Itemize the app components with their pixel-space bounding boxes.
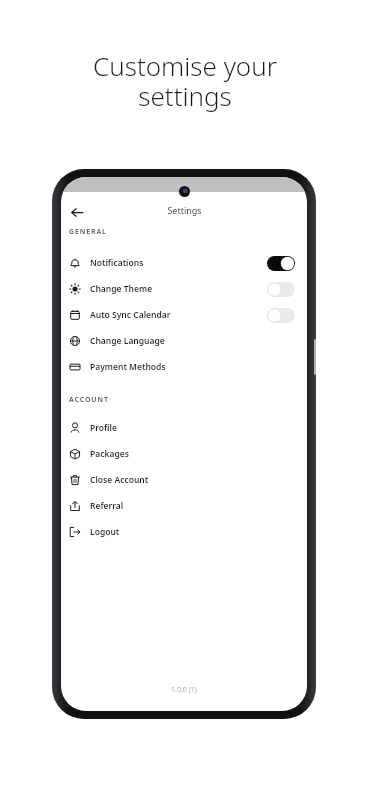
staticText: Profile [90,422,117,434]
button[interactable]: Close Account [61,467,307,493]
staticText: Close Account [90,474,149,486]
staticText: Customise your settings [93,48,277,114]
staticText: ACCOUNT [69,395,109,405]
staticText: Change Language [90,335,165,347]
button[interactable]: Auto Sync Calendar [61,302,307,328]
staticText: 1.0.0 (1) [171,685,197,695]
staticText: Referral [90,500,124,512]
button[interactable]: Notifications [61,250,307,276]
button[interactable]: Change Theme [61,276,307,302]
button[interactable]: Packages [61,441,307,467]
button[interactable]: Logout [61,519,307,545]
button[interactable]: Back [64,199,90,225]
staticText: GENERAL [69,227,107,237]
staticText: Payment Methods [90,361,166,373]
button[interactable]: Toggle off [267,282,295,297]
staticText: Auto Sync Calendar [90,309,171,321]
button[interactable]: Payment Methods [61,354,307,380]
staticText: Notifications [90,257,144,269]
button[interactable]: Change Language [61,328,307,354]
button[interactable]: Referral [61,493,307,519]
button[interactable]: Toggle on [267,256,295,271]
button[interactable]: Toggle off [267,308,295,323]
staticText: Packages [90,448,129,460]
staticText: Change Theme [90,283,153,295]
staticText: Settings [167,204,202,216]
button[interactable]: Profile [61,415,307,441]
staticText: Logout [90,526,120,538]
